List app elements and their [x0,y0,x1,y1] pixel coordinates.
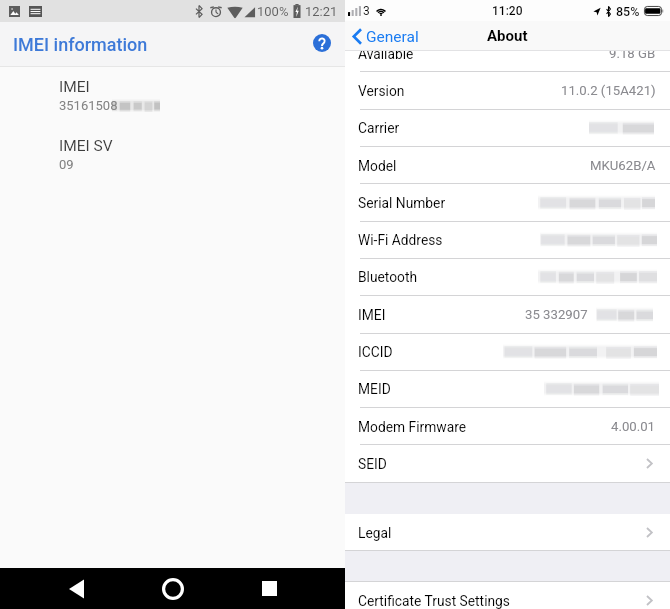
staticText: IMEI information [13,34,148,55]
staticText: 09 [59,157,74,172]
staticText: Wi-Fi Address [358,232,443,248]
button[interactable]: Serial Number [345,184,670,221]
staticText: MKU62B/A [590,158,656,173]
staticText: Modem Firmware [358,419,467,435]
button[interactable]: Model [345,147,670,184]
staticText: Available [358,46,414,62]
button[interactable]: General [352,27,419,46]
button[interactable]: SEID [345,445,670,482]
staticText: Certificate Trust Settings [358,593,510,609]
button[interactable]: Legal [345,514,670,551]
staticText: 9.18 GB [609,46,656,61]
staticText: 11:20 [492,4,523,18]
button[interactable]: Bluetooth [345,258,670,295]
button[interactable]: Carrier [345,109,670,146]
button[interactable]: Wi-Fi Address [345,221,670,258]
button[interactable]: MEID [345,370,670,407]
button[interactable]: Certificate Trust Settings [345,582,670,609]
staticText: Serial Number [358,195,446,211]
staticText: Model [358,158,397,174]
button[interactable]: Back [55,568,97,609]
button[interactable]: ICCID [345,333,670,370]
button[interactable]: Recents [248,568,290,609]
staticText: General [366,28,419,46]
button[interactable]: Version [345,72,670,109]
staticText: 4.00.01 [611,419,656,434]
button[interactable]: Help [307,28,337,58]
button[interactable]: IMEI SV [0,137,345,172]
button[interactable]: Home [152,568,194,609]
staticText: 11.0.2 (15A421) [561,83,656,98]
button[interactable]: IMEI [345,296,670,333]
button[interactable]: Modem Firmware [345,408,670,445]
staticText: 3 [363,4,370,18]
staticText: IMEI [358,307,386,323]
staticText: IMEI SV [59,137,113,155]
staticText: MEID [358,381,391,397]
staticText: Version [358,83,405,99]
staticText: 35161508 [59,98,118,113]
staticText: 12:21 [305,4,338,19]
staticText: IMEI [59,78,90,96]
staticText: About [487,27,528,45]
staticText: 35 332907 [525,307,588,322]
staticText: 85% [616,4,640,19]
staticText: SEID [358,456,387,472]
staticText: Carrier [358,120,400,136]
button[interactable]: IMEI [0,78,345,113]
staticText: ICCID [358,344,393,360]
staticText: 100% [257,4,289,19]
staticText: Legal [358,525,392,541]
staticText: Bluetooth [358,269,418,285]
button[interactable]: Available [345,35,670,72]
